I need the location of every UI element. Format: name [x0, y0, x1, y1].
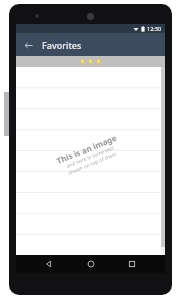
staticText: This is an image — [55, 132, 118, 166]
staticText: Favorites — [42, 39, 82, 51]
button[interactable]: Home — [83, 256, 99, 272]
button[interactable]: Back — [20, 37, 36, 53]
staticText: and here is some text — [65, 144, 115, 170]
button[interactable]: Back — [41, 256, 57, 272]
button[interactable]: Rating three stars — [79, 58, 102, 65]
button[interactable]: Recent apps — [124, 256, 140, 272]
staticText: 12:30 — [147, 25, 162, 32]
staticText: shown on top of them — [67, 151, 118, 177]
